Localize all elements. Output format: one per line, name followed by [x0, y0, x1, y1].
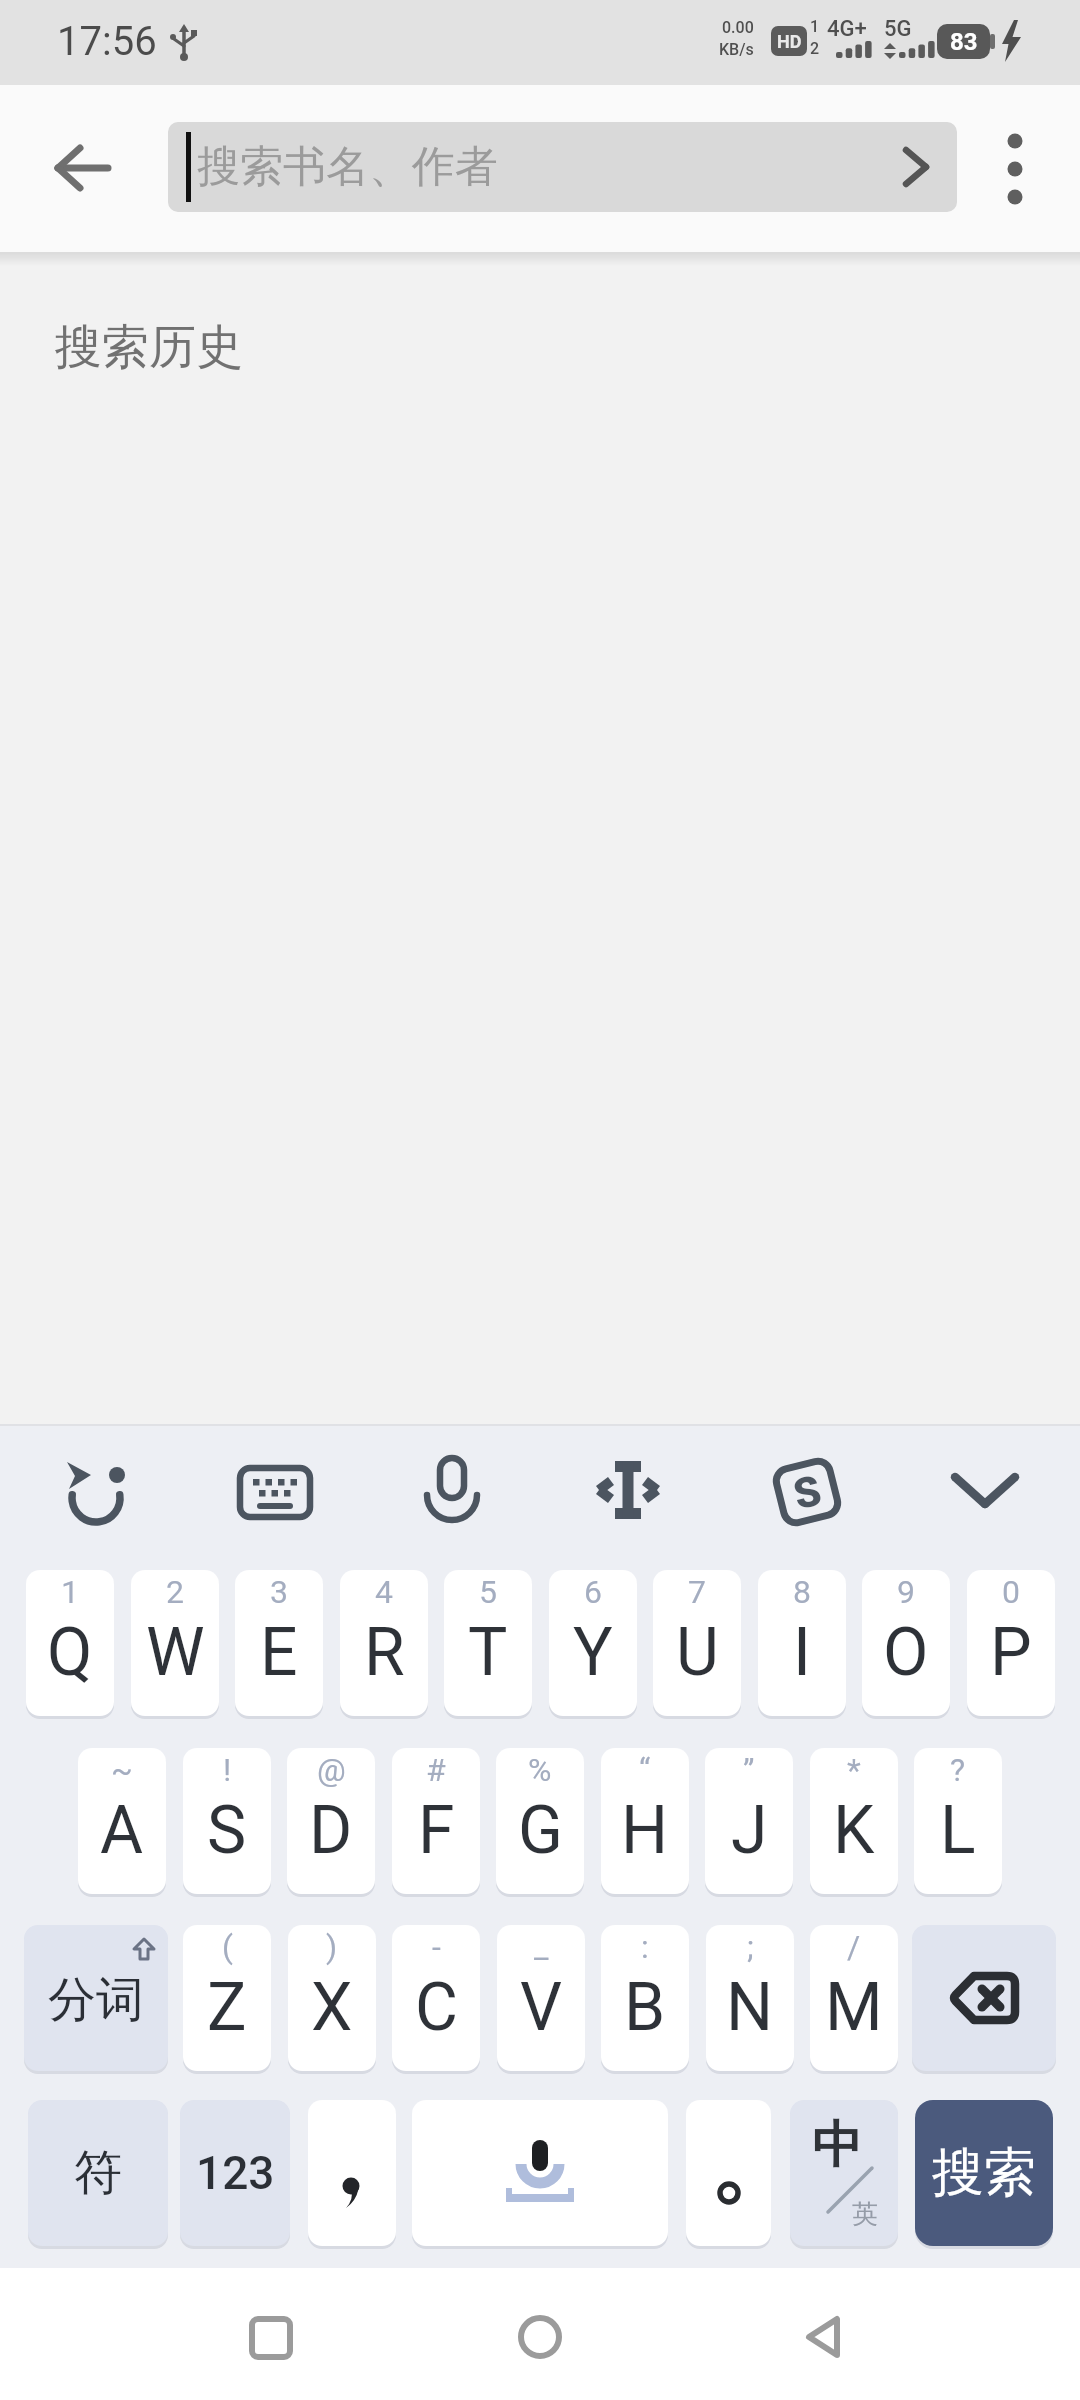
staticText: 2 — [166, 1573, 184, 1611]
staticText: 5G — [884, 16, 912, 42]
button[interactable]: ? — [914, 1748, 1002, 1894]
button[interactable]: ) — [288, 1925, 376, 2071]
button[interactable]: 9 — [862, 1570, 950, 1716]
staticText: E — [260, 1614, 298, 1691]
staticText: 6 — [584, 1573, 602, 1611]
button[interactable] — [686, 2100, 771, 2246]
staticText: 3 — [270, 1573, 288, 1611]
button[interactable] — [225, 1442, 325, 1542]
button[interactable] — [578, 1442, 678, 1542]
button[interactable] — [220, 2284, 320, 2384]
staticText: 1 — [810, 17, 820, 36]
button[interactable] — [40, 130, 120, 206]
button[interactable] — [308, 2100, 396, 2246]
button[interactable] — [760, 2284, 860, 2384]
staticText: ( — [222, 1928, 233, 1966]
staticText: - — [432, 1928, 441, 1966]
button[interactable] — [412, 2100, 668, 2246]
button[interactable]: _ — [497, 1925, 585, 2071]
button[interactable]: 3 — [235, 1570, 323, 1716]
staticText: % — [528, 1751, 552, 1789]
button[interactable] — [985, 115, 1045, 223]
staticText: “ — [639, 1751, 651, 1789]
button[interactable]: ! — [183, 1748, 271, 1894]
button[interactable]: 搜索书名、作者 — [168, 122, 957, 212]
button[interactable]: 0 — [967, 1570, 1055, 1716]
button[interactable]: # — [392, 1748, 480, 1894]
button[interactable]: “ — [601, 1748, 689, 1894]
button[interactable] — [48, 1442, 148, 1542]
staticText: ) — [326, 1928, 338, 1966]
staticText: 搜索 — [932, 2140, 1036, 2206]
button[interactable] — [490, 2284, 590, 2384]
staticText: S — [207, 1792, 247, 1869]
staticText: 17:56 — [57, 18, 157, 65]
button[interactable]: 5 — [444, 1570, 532, 1716]
staticText: 2 — [810, 39, 820, 58]
staticText: I — [793, 1614, 811, 1691]
staticText: X — [311, 1969, 353, 2046]
button[interactable]: * — [810, 1748, 898, 1894]
button[interactable]: 分词 — [24, 1925, 168, 2071]
button[interactable]: ; — [706, 1925, 794, 2071]
button[interactable]: S — [757, 1442, 857, 1542]
staticText: / — [847, 1928, 861, 1966]
button[interactable]: - — [392, 1925, 480, 2071]
staticText: Q — [47, 1614, 93, 1691]
staticText: R — [364, 1614, 405, 1691]
staticText: U — [676, 1614, 719, 1691]
staticText: 英 — [852, 2198, 878, 2231]
button[interactable]: ( — [183, 1925, 271, 2071]
button[interactable]: 符 — [28, 2100, 168, 2246]
button[interactable]: / — [810, 1925, 898, 2071]
staticText: L — [940, 1792, 976, 1869]
staticText: ? — [950, 1751, 966, 1789]
button[interactable]: 7 — [653, 1570, 741, 1716]
button[interactable]: @ — [287, 1748, 375, 1894]
staticText: F — [418, 1792, 455, 1869]
staticText: 4 — [375, 1573, 393, 1611]
button[interactable] — [935, 1442, 1035, 1542]
staticText: 0 — [1002, 1573, 1020, 1611]
staticText: 123 — [196, 2146, 275, 2200]
staticText: 搜索历史 — [55, 318, 243, 377]
button[interactable]: : — [601, 1925, 689, 2071]
staticText: 中 — [812, 2114, 862, 2177]
staticText: * — [847, 1751, 861, 1789]
staticText: @ — [317, 1751, 346, 1789]
staticText: 7 — [688, 1573, 706, 1611]
staticText: 0.00 — [722, 18, 754, 37]
button[interactable]: % — [496, 1748, 584, 1894]
staticText: J — [731, 1792, 768, 1869]
staticText: O — [883, 1614, 929, 1691]
staticText: B — [624, 1969, 666, 2046]
button[interactable]: 6 — [549, 1570, 637, 1716]
staticText: A — [100, 1792, 144, 1869]
button[interactable]: ” — [705, 1748, 793, 1894]
button[interactable]: 123 — [180, 2100, 290, 2246]
staticText: 搜索书名、作者 — [197, 140, 498, 194]
staticText: D — [309, 1792, 353, 1869]
staticText: 4G+ — [827, 16, 867, 42]
staticText: Y — [573, 1614, 613, 1691]
button[interactable]: 2 — [131, 1570, 219, 1716]
staticText: ; — [747, 1928, 754, 1966]
button[interactable]: ~ — [78, 1748, 166, 1894]
button[interactable] — [402, 1442, 502, 1542]
button[interactable]: 搜索 — [915, 2100, 1053, 2246]
button[interactable]: 4 — [340, 1570, 428, 1716]
button[interactable] — [912, 1925, 1056, 2071]
staticText: V — [520, 1969, 563, 2046]
staticText: _ — [534, 1928, 549, 1966]
staticText: ~ — [111, 1751, 133, 1789]
button[interactable]: 1 — [26, 1570, 114, 1716]
staticText: M — [825, 1969, 883, 2046]
staticText: ” — [743, 1751, 755, 1789]
button[interactable]: 中 — [790, 2100, 898, 2246]
staticText: 符 — [74, 2143, 122, 2203]
button[interactable]: 8 — [758, 1570, 846, 1716]
staticText: 83 — [950, 28, 978, 56]
staticText: C — [415, 1969, 458, 2046]
staticText: P — [990, 1614, 1032, 1691]
staticText: HD — [777, 31, 802, 52]
